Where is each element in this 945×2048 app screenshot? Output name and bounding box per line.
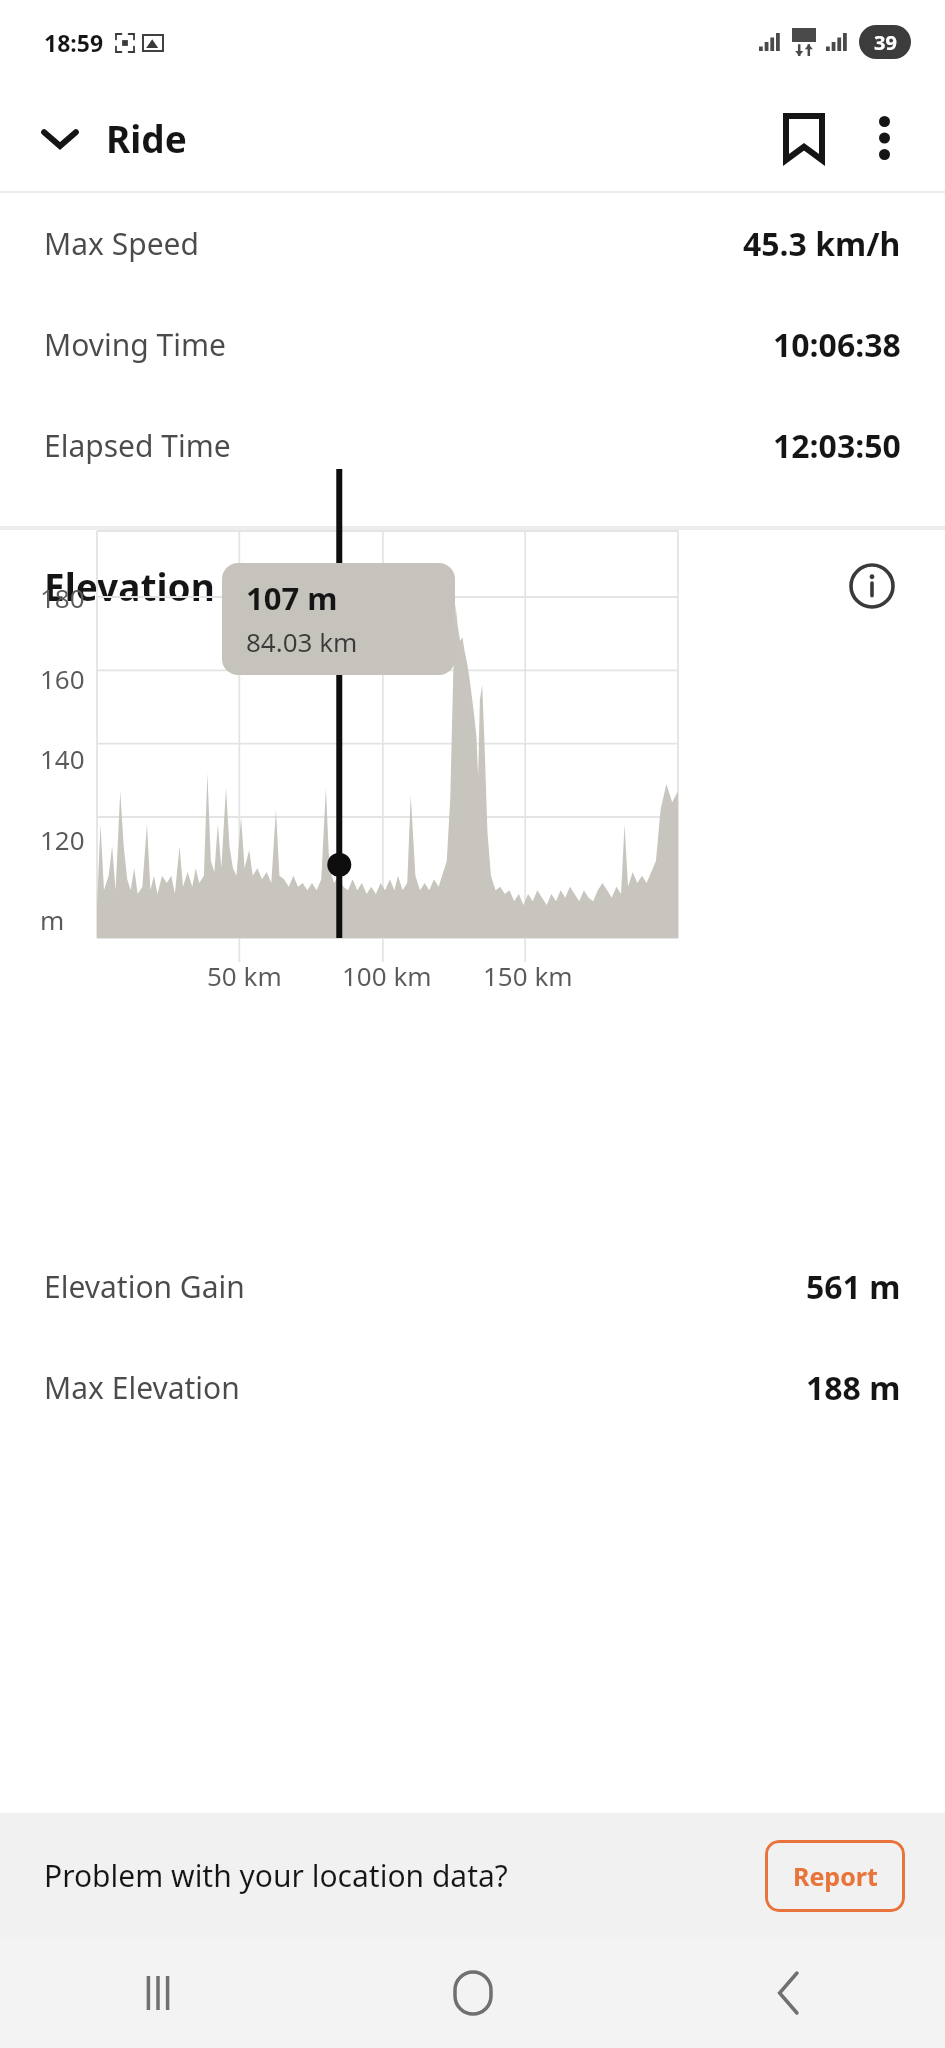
staticText: 12:03:50 — [773, 424, 901, 468]
button[interactable]: Collapse — [28, 106, 92, 170]
staticText: 45.3 km/h — [743, 222, 901, 266]
button[interactable]: Information — [843, 557, 901, 615]
staticText: 150 km — [483, 958, 573, 993]
staticText: 18:59 — [44, 27, 104, 58]
button[interactable]: Elevation Gain — [0, 1236, 945, 1337]
staticText: m — [40, 902, 65, 937]
button[interactable]: Max Elevation — [0, 1337, 945, 1438]
button[interactable]: Save — [767, 101, 841, 175]
staticText: Max Elevation — [44, 1367, 240, 1408]
button[interactable]: More options — [847, 101, 921, 175]
staticText: 107 m — [246, 577, 338, 619]
staticText: Report — [793, 1859, 878, 1893]
staticText: Problem with your location data? — [44, 1855, 508, 1896]
staticText: 120 — [40, 822, 85, 857]
button[interactable]: Recents — [0, 1938, 315, 2048]
staticText: 180 — [40, 580, 85, 615]
staticText: 100 km — [342, 958, 432, 993]
button[interactable]: Back — [630, 1938, 945, 2048]
staticText: Ride — [106, 113, 187, 163]
button[interactable]: Report — [765, 1840, 905, 1912]
staticText: 140 — [40, 741, 85, 776]
button[interactable]: Elapsed Time — [0, 395, 945, 496]
staticText: Max Speed — [44, 223, 199, 264]
button[interactable]: Home — [315, 1938, 630, 2048]
staticText: 561 m — [806, 1265, 901, 1309]
staticText: 188 m — [806, 1366, 901, 1410]
staticText: 39 — [874, 29, 897, 56]
staticText: 50 km — [207, 958, 282, 993]
staticText: Elapsed Time — [44, 425, 231, 466]
staticText: 10:06:38 — [773, 323, 901, 367]
staticText: 84.03 km — [246, 624, 358, 659]
staticText: 160 — [40, 661, 85, 696]
button[interactable]: Moving Time — [0, 294, 945, 395]
button[interactable]: Max Speed — [0, 193, 945, 294]
staticText: Elevation — [44, 561, 215, 611]
staticText: Elevation Gain — [44, 1266, 245, 1307]
staticText: Moving Time — [44, 324, 226, 365]
